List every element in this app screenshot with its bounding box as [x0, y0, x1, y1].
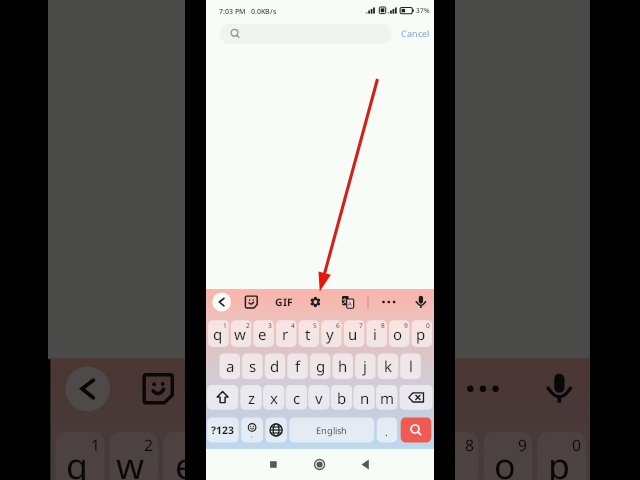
button[interactable]	[402, 24, 432, 44]
button[interactable]: Stickers	[242, 291, 261, 310]
button[interactable]: Back	[219, 291, 237, 309]
button[interactable]: Keyboard settings	[305, 291, 325, 311]
button[interactable]: Back	[356, 456, 373, 473]
button[interactable]: Home	[310, 456, 327, 473]
button[interactable]: Recent apps	[264, 456, 281, 473]
button[interactable]: Translate	[337, 291, 357, 311]
button[interactable]: More options	[378, 291, 398, 311]
button[interactable]: Voice input	[411, 291, 431, 311]
button[interactable]: Search	[219, 24, 399, 44]
button[interactable]: GIF	[273, 291, 293, 311]
